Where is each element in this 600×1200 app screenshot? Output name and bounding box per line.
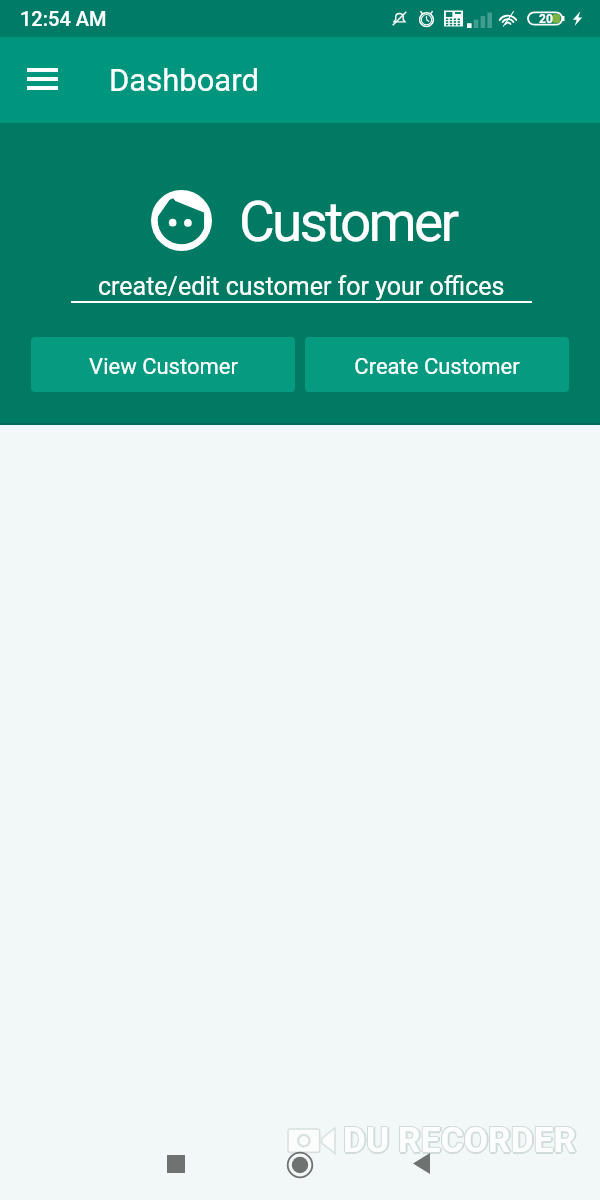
staticText: Dashboard: [109, 62, 259, 98]
staticText: DU RECORDER: [342, 1119, 576, 1160]
staticText: DU RECORDER: [343, 1122, 577, 1163]
staticText: DU RECORDER: [343, 1120, 577, 1161]
staticText: Customer: [239, 190, 457, 254]
staticText: Create Customer: [354, 354, 520, 380]
staticText: create/edit customer for your offices: [98, 272, 505, 301]
staticText: 20: [539, 12, 553, 26]
button[interactable]: Create Customer: [305, 337, 569, 392]
staticText: DU RECORDER: [343, 1119, 577, 1160]
button[interactable]: View Customer: [31, 337, 295, 392]
staticText: DU RECORDER: [342, 1120, 576, 1161]
staticText: DU RECORDER: [344, 1121, 578, 1162]
button[interactable]: Open navigation menu: [16, 52, 69, 105]
staticText: View Customer: [89, 354, 238, 380]
staticText: DU RECORDER: [345, 1120, 579, 1161]
staticText: 12:54 AM: [20, 7, 107, 30]
